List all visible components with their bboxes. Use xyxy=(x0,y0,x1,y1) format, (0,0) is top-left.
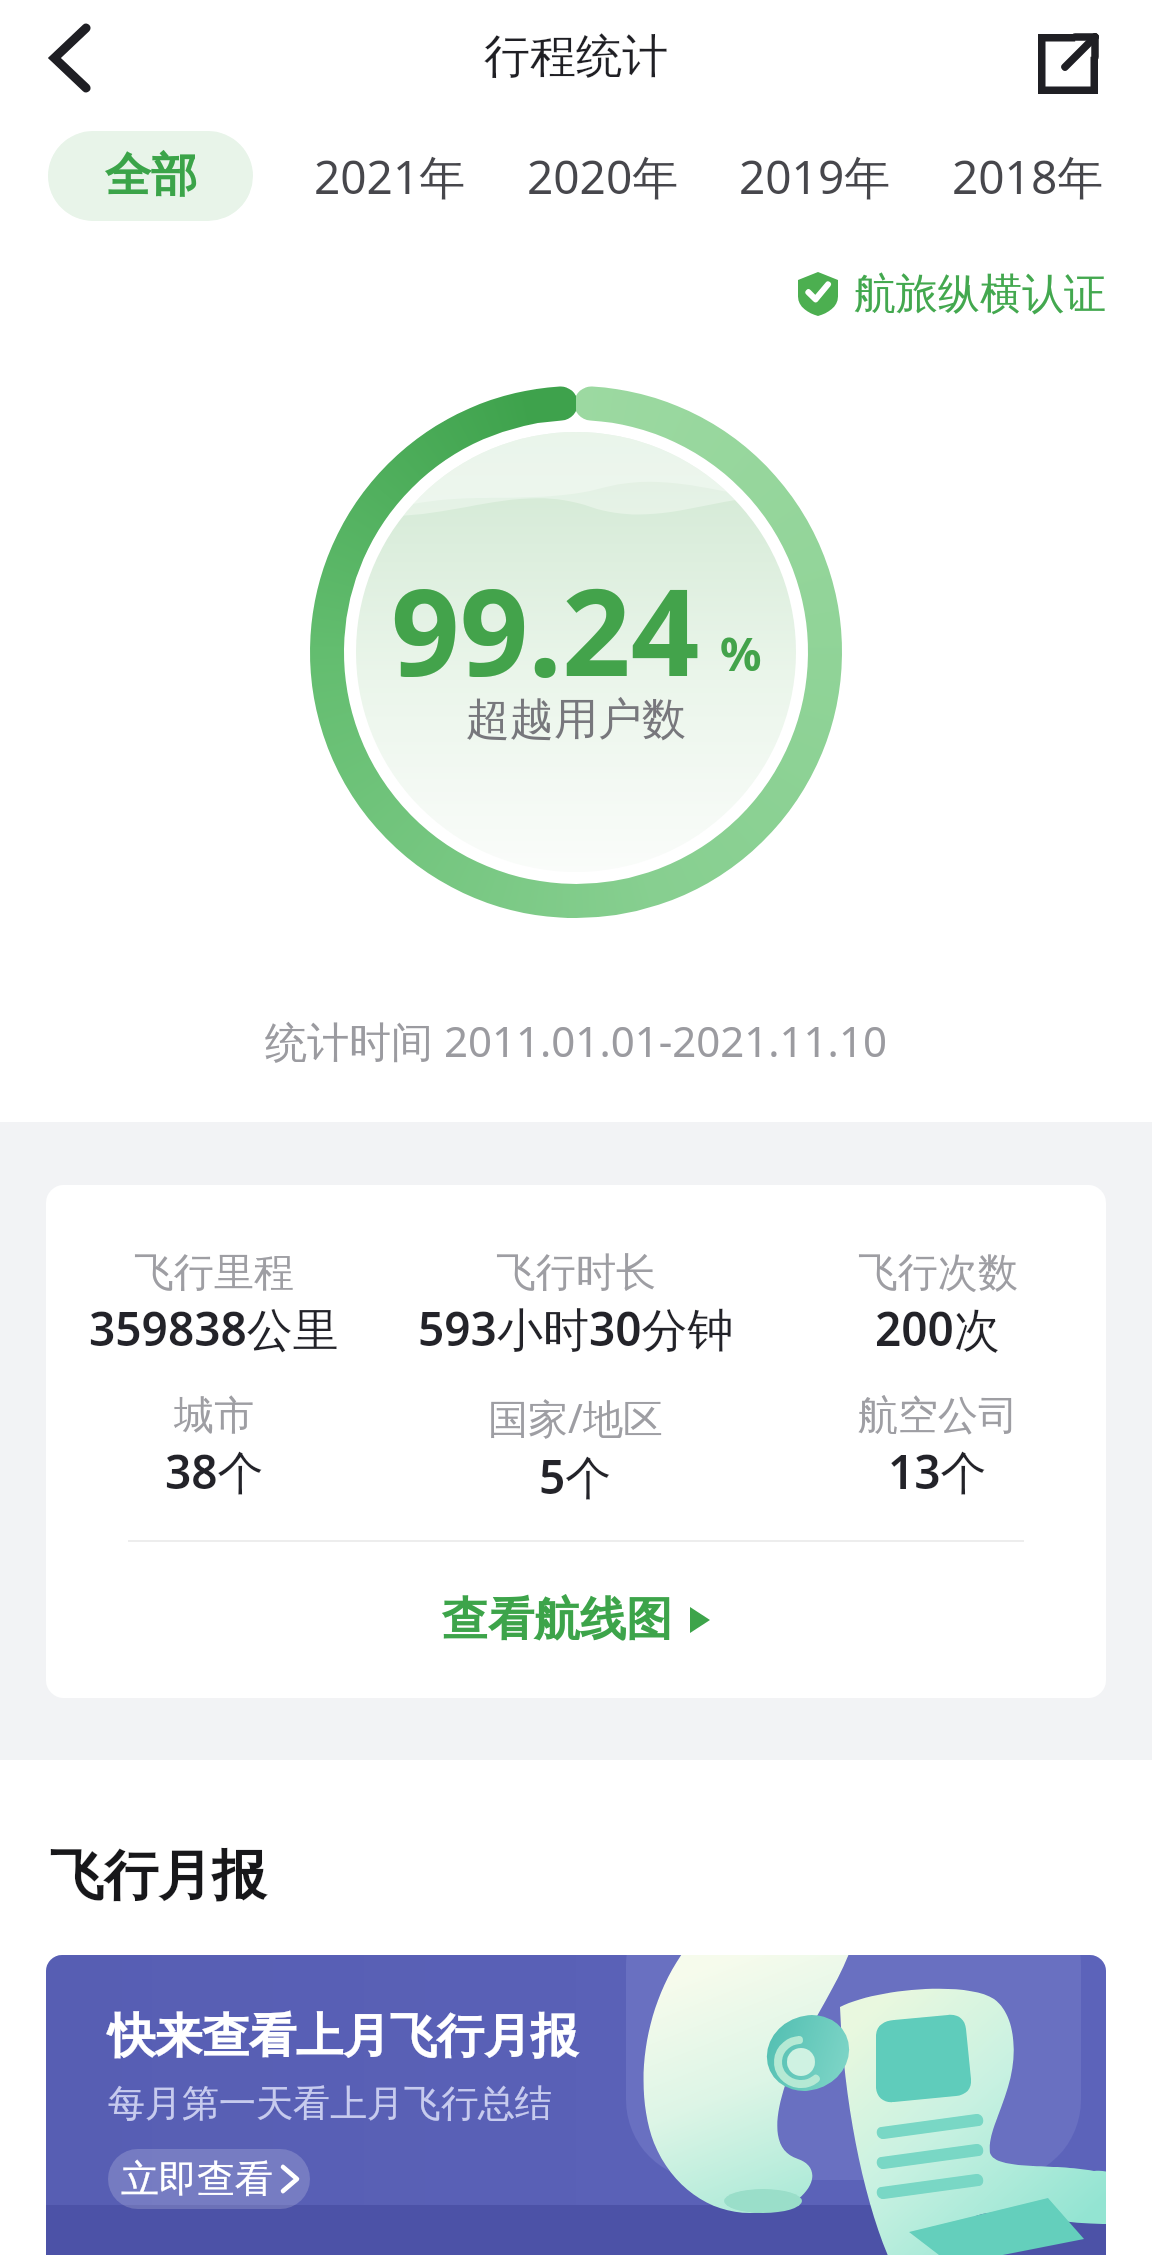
staticText: 全部 xyxy=(105,147,197,205)
button[interactable]: 全部 xyxy=(48,131,253,221)
button[interactable]: 2021年 xyxy=(314,131,466,221)
staticText: 13个 xyxy=(888,1440,987,1503)
staticText: % xyxy=(720,622,762,685)
staticText: 359838公里 xyxy=(89,1297,339,1360)
staticText: 航空公司 xyxy=(858,1390,1018,1440)
staticText: 38个 xyxy=(165,1440,264,1503)
button[interactable]: 快来查看上月飞行月报 xyxy=(46,1955,1106,2255)
staticText: 快来查看上月飞行月报 xyxy=(108,2007,578,2066)
staticText: 航旅纵横认证 xyxy=(854,268,1106,321)
staticText: 200次 xyxy=(875,1297,1000,1360)
staticText: 国家/地区 xyxy=(488,1390,663,1445)
staticText: 飞行时长 xyxy=(496,1247,656,1297)
staticText: 5个 xyxy=(539,1445,612,1508)
staticText: 593小时30分钟 xyxy=(418,1297,734,1360)
staticText: 2018年 xyxy=(952,145,1104,208)
staticText: 99.24 xyxy=(391,548,700,711)
button[interactable]: 立即查看 xyxy=(108,2149,310,2209)
button[interactable] xyxy=(34,20,110,96)
staticText: 查看航线图 xyxy=(442,1591,672,1649)
button[interactable] xyxy=(1026,22,1110,106)
staticText: 每月第一天看上月飞行总结 xyxy=(108,2080,552,2127)
button[interactable]: 2020年 xyxy=(527,131,679,221)
button[interactable]: 2018年 xyxy=(952,131,1104,221)
staticText: 城市 xyxy=(174,1390,254,1440)
staticText: 2021年 xyxy=(314,145,466,208)
staticText: 飞行月报 xyxy=(50,1842,266,1910)
staticText: 行程统计 xyxy=(0,28,1152,86)
staticText: 飞行里程 xyxy=(134,1247,294,1297)
button[interactable]: 查看航线图 xyxy=(46,1542,1106,1698)
button[interactable]: 2019年 xyxy=(739,131,891,221)
staticText: 飞行次数 xyxy=(858,1247,1018,1297)
staticText: 2020年 xyxy=(527,145,679,208)
staticText: 2019年 xyxy=(739,145,891,208)
staticText: 超越用户数 xyxy=(0,692,1152,747)
staticText: 立即查看 xyxy=(121,2155,273,2203)
staticText: 统计时间 2011.01.01-2021.11.10 xyxy=(0,1012,1152,1069)
